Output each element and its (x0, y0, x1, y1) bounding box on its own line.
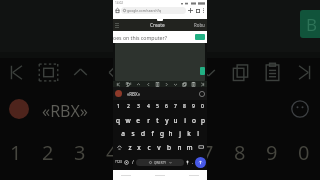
button[interactable]: f (148, 127, 157, 140)
staticText: 7 (202, 139, 214, 166)
button[interactable]: 8 (180, 100, 189, 113)
staticText: x (137, 143, 141, 152)
button[interactable]: . (190, 154, 195, 170)
staticText: h (168, 129, 173, 138)
button[interactable]: 5 (153, 100, 162, 113)
button[interactable]: l (193, 127, 202, 140)
button[interactable]: copy (180, 81, 189, 87)
staticText: 9 (266, 139, 278, 166)
button[interactable]: o (189, 113, 198, 127)
button[interactable]: More options (201, 8, 206, 13)
staticText: oes on this computer? (113, 34, 167, 41)
button[interactable]: Tabs (194, 7, 201, 14)
button[interactable]: g (157, 127, 166, 140)
staticText: B (306, 13, 318, 36)
button[interactable]: select (123, 81, 133, 87)
button[interactable]: p (198, 113, 207, 127)
staticText: y (165, 116, 169, 125)
button[interactable]: k (184, 127, 193, 140)
staticText: 4 (147, 103, 150, 110)
staticText: s (131, 129, 135, 138)
staticText: z (128, 143, 132, 152)
button[interactable]: u (171, 113, 180, 127)
button[interactable]: j (175, 127, 184, 140)
button[interactable]: Account (115, 90, 122, 97)
button[interactable]: 4 (143, 100, 153, 113)
button[interactable]: skipend (198, 81, 207, 87)
button[interactable]: / (130, 154, 136, 170)
staticText: 5 (138, 139, 150, 166)
staticText: m (186, 143, 193, 152)
button[interactable]: e (133, 113, 143, 127)
staticText: 1 (10, 139, 22, 166)
button[interactable]: google.com/search?q (121, 7, 186, 14)
button[interactable]: Enter (195, 157, 206, 168)
button[interactable]: 2 (123, 100, 133, 113)
button[interactable]: n (174, 140, 184, 154)
button[interactable]: Emoji (198, 90, 205, 97)
staticText: «RBX» (42, 100, 89, 122)
button[interactable]: Home (114, 7, 121, 14)
button[interactable]: d (138, 127, 148, 140)
staticText: f (151, 129, 154, 138)
staticText: Create (150, 22, 165, 29)
staticText: u (173, 116, 178, 125)
button[interactable]: Backspace (194, 140, 207, 154)
staticText: 1 (117, 103, 120, 110)
button[interactable]: i (180, 113, 189, 127)
staticText: p (201, 116, 205, 125)
staticText: 8 (234, 139, 246, 166)
staticText: ?123 (115, 160, 122, 164)
button[interactable]: fwd (162, 81, 171, 87)
button[interactable]: m (184, 140, 194, 154)
button[interactable]: a (118, 127, 128, 140)
button[interactable]: x (134, 140, 144, 154)
staticText: o (192, 116, 196, 125)
staticText: 3 (74, 139, 86, 166)
button[interactable]: Search (195, 34, 205, 40)
button[interactable]: Send (200, 67, 205, 75)
staticText: 7 (174, 103, 177, 110)
staticText: 5 (156, 103, 159, 110)
button[interactable]: z (125, 140, 134, 154)
button[interactable]: Menu (115, 23, 121, 28)
button[interactable]: bold (153, 81, 162, 87)
staticText: c (147, 143, 151, 152)
button[interactable]: 3 (133, 100, 143, 113)
button[interactable]: up (133, 81, 143, 87)
button[interactable]: Emoji (122, 154, 130, 170)
button[interactable]: b (164, 140, 174, 154)
button[interactable]: down (171, 81, 180, 87)
staticText: n (177, 143, 182, 152)
button[interactable]: 0 (198, 100, 207, 113)
button[interactable]: v (154, 140, 164, 154)
button[interactable]: 1 (113, 100, 123, 113)
button[interactable]: Shift (113, 140, 125, 154)
button[interactable]: ?123 (115, 154, 122, 170)
button[interactable]: t (153, 113, 162, 127)
button[interactable]: 7 (171, 100, 180, 113)
staticText: / (132, 159, 134, 165)
button[interactable]: c (144, 140, 154, 154)
button[interactable]: QWERTY (136, 159, 184, 166)
button[interactable]: r (143, 113, 153, 127)
button[interactable]: back (143, 81, 153, 87)
button[interactable]: skipstart (113, 81, 123, 87)
button[interactable]: w (123, 113, 133, 127)
staticText: google.com/search?q (127, 8, 162, 13)
button[interactable]: clipboard (189, 81, 198, 87)
button[interactable]: y (162, 113, 171, 127)
button[interactable]: q (113, 113, 123, 127)
button[interactable]: h (166, 127, 175, 140)
button[interactable]: New tab (187, 7, 194, 14)
button[interactable]: Microphone (184, 154, 190, 170)
staticText: 6 (165, 103, 168, 110)
staticText: 3 (137, 103, 140, 110)
button[interactable]: 9 (189, 100, 198, 113)
staticText: k (187, 129, 191, 138)
button[interactable]: s (128, 127, 138, 140)
button[interactable]: 6 (162, 100, 171, 113)
